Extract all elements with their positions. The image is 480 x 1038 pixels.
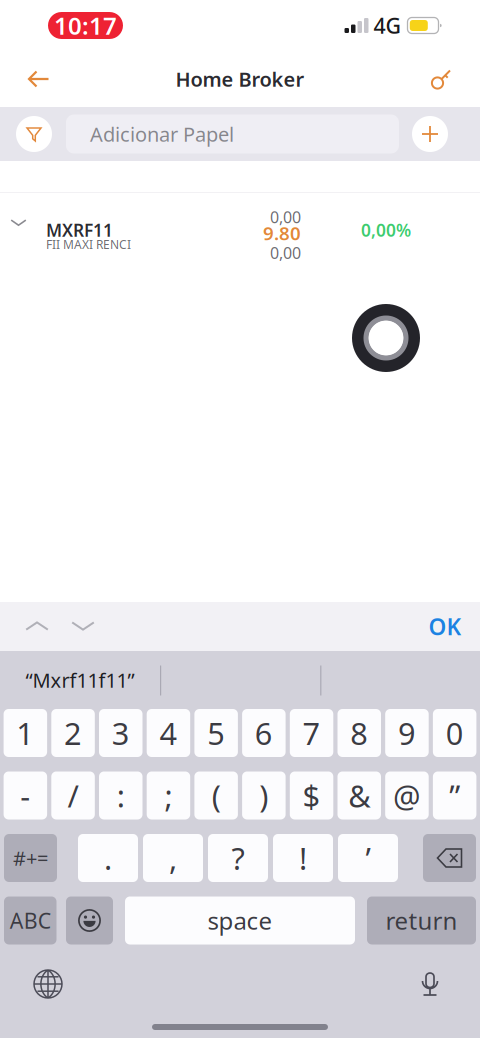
staticText: 0 <box>446 713 464 753</box>
staticText: 3 <box>112 713 130 753</box>
button[interactable]: 3 <box>99 709 142 757</box>
button[interactable]: Next keyboard <box>24 964 72 1004</box>
button[interactable]: $ <box>290 771 333 819</box>
button[interactable]: Previous field <box>14 602 60 651</box>
staticText: Home Broker <box>175 66 304 92</box>
button[interactable]: #+= <box>4 834 57 882</box>
staticText: OK <box>428 611 461 641</box>
button[interactable]: Delete <box>423 834 476 882</box>
button[interactable]: MXRF11 <box>0 193 480 263</box>
staticText: $ <box>302 775 320 816</box>
button[interactable]: 4 <box>147 709 190 757</box>
staticText: & <box>348 775 370 816</box>
button[interactable]: , <box>143 834 203 882</box>
staticText: space <box>207 905 272 936</box>
staticText: MXRF11 <box>46 218 113 241</box>
staticText: ABC <box>10 906 51 935</box>
staticText: FII MAXI RENCI <box>46 236 131 252</box>
button[interactable]: - <box>4 771 47 819</box>
staticText: ” <box>449 775 460 816</box>
staticText: @ <box>393 775 421 816</box>
staticText: 10:17 <box>54 10 117 41</box>
button[interactable]: space <box>125 896 355 944</box>
staticText: , <box>169 838 177 878</box>
button[interactable]: Unlock <box>416 55 466 103</box>
staticText: 8 <box>350 713 368 753</box>
button[interactable]: ? <box>208 834 268 882</box>
button[interactable]: ABC <box>4 896 56 944</box>
button[interactable]: & <box>337 771 381 819</box>
button[interactable]: ’ <box>338 834 398 882</box>
button[interactable]: Back <box>14 55 64 103</box>
staticText: 6 <box>255 713 273 753</box>
button[interactable]: Add <box>412 116 448 152</box>
staticText: 9 <box>398 713 416 753</box>
button[interactable]: / <box>51 771 95 819</box>
button[interactable]: Adicionar Papel <box>66 114 399 153</box>
button[interactable]: ” <box>433 771 476 819</box>
button[interactable]: 7 <box>290 709 333 757</box>
button[interactable]: Emoji <box>66 896 113 944</box>
staticText: return <box>385 905 457 936</box>
staticText: 4 <box>159 713 177 753</box>
staticText: 0,00 <box>270 206 301 228</box>
staticText: “Mxrf11f11” <box>25 667 134 693</box>
staticText: : <box>117 775 125 816</box>
staticText: 0,00% <box>361 218 411 241</box>
button[interactable]: ! <box>273 834 333 882</box>
button[interactable]: ) <box>242 771 286 819</box>
staticText: / <box>67 775 78 816</box>
button[interactable]: : <box>99 771 142 819</box>
button[interactable]: OK <box>424 602 466 651</box>
staticText: ) <box>259 775 268 816</box>
button[interactable]: return <box>367 896 476 944</box>
button[interactable]: 1 <box>4 709 47 757</box>
staticText: ? <box>231 838 244 878</box>
button[interactable]: 2 <box>51 709 95 757</box>
staticText: ! <box>299 838 307 878</box>
staticText: Adicionar Papel <box>90 121 234 147</box>
button[interactable]: @ <box>385 771 429 819</box>
staticText: 7 <box>302 713 320 753</box>
staticText: #+= <box>13 845 48 871</box>
button[interactable]: 5 <box>194 709 238 757</box>
button[interactable]: 6 <box>242 709 286 757</box>
staticText: . <box>104 838 112 878</box>
button[interactable]: Next field <box>60 602 106 651</box>
staticText: 0,00 <box>270 242 301 263</box>
staticText: - <box>20 775 30 816</box>
staticText: ’ <box>365 838 370 878</box>
staticText: ; <box>164 775 172 816</box>
button[interactable]: 8 <box>337 709 381 757</box>
button[interactable]: 0 <box>433 709 476 757</box>
button[interactable]: . <box>78 834 138 882</box>
button[interactable]: Dictation <box>406 964 454 1004</box>
staticText: 4G <box>373 11 401 40</box>
staticText: ( <box>212 775 221 816</box>
staticText: 1 <box>16 713 34 753</box>
button[interactable]: ; <box>147 771 190 819</box>
staticText: 2 <box>64 713 82 753</box>
staticText: 9.80 <box>263 221 301 245</box>
button[interactable]: “Mxrf11f11” <box>0 652 160 707</box>
button[interactable]: Filter <box>16 116 52 152</box>
button[interactable]: ( <box>194 771 238 819</box>
button[interactable]: 9 <box>385 709 429 757</box>
staticText: 5 <box>207 713 225 753</box>
